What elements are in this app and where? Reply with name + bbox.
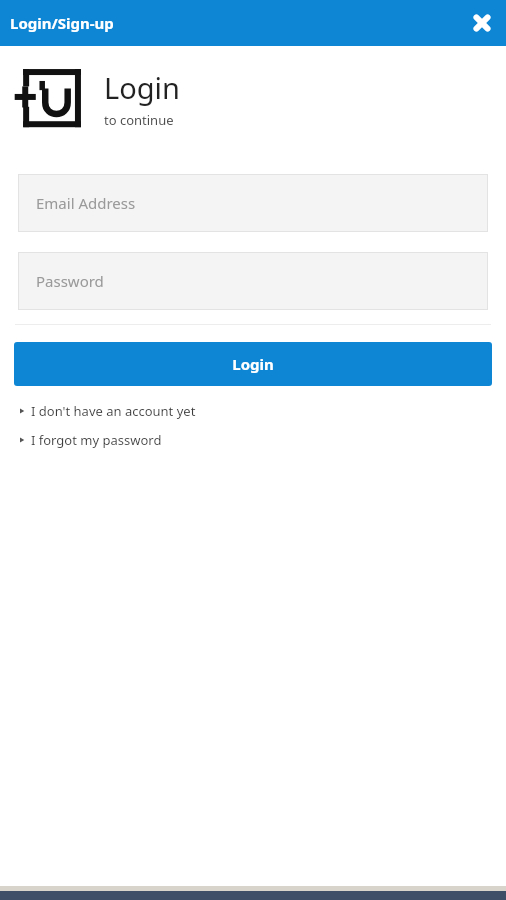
button[interactable]: Close	[464, 5, 500, 41]
button[interactable]: I forgot my password	[18, 431, 506, 449]
staticText: I forgot my password	[31, 431, 162, 449]
staticText: Password	[36, 271, 104, 291]
button[interactable]: Password	[18, 252, 488, 310]
staticText: Email Address	[36, 193, 136, 213]
staticText: Login/Sign-up	[10, 13, 114, 33]
staticText: I don't have an account yet	[31, 402, 196, 420]
staticText: Login	[104, 68, 180, 107]
button[interactable]: Login	[14, 342, 492, 386]
button[interactable]: Email Address	[18, 174, 488, 232]
staticText: Login	[232, 354, 274, 374]
staticText: to continue	[104, 111, 174, 129]
button[interactable]: I don't have an account yet	[18, 402, 506, 420]
